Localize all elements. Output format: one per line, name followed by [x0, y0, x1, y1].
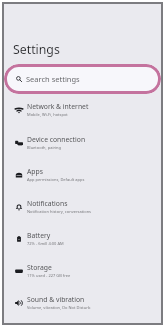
staticText: 72% - 6mill 4:00 AM — [27, 241, 64, 246]
staticText: Mobile, Wi-Fi, hotspot — [27, 112, 68, 117]
staticText: Notification history, conversations — [27, 209, 92, 214]
button[interactable]: Notifications — [2, 191, 163, 223]
staticText: Settings — [13, 41, 60, 58]
staticText: Volume, vibration, Do Not Disturb — [27, 305, 91, 310]
button[interactable]: Network & internet — [2, 94, 163, 126]
staticText: Storage — [27, 263, 52, 272]
staticText: 11% used - 227 GB free — [27, 273, 71, 278]
staticText: Network & internet — [27, 102, 89, 111]
button[interactable]: Sound & vibration — [2, 287, 163, 319]
button[interactable]: Device connection — [2, 127, 163, 159]
staticText: Notifications — [27, 199, 68, 208]
staticText: Sound & vibration — [27, 295, 85, 304]
staticText: Search settings — [26, 74, 80, 84]
staticText: Bluetooth, pairing — [27, 145, 62, 150]
button[interactable]: Apps — [2, 159, 163, 191]
button[interactable]: Search settings — [4, 64, 161, 94]
staticText: Battery — [27, 231, 51, 240]
staticText: App permissions, Default apps — [27, 177, 85, 182]
staticText: Apps — [27, 167, 43, 176]
button[interactable]: Battery — [2, 223, 163, 255]
button[interactable]: Storage — [2, 255, 163, 287]
staticText: Device connection — [27, 135, 86, 144]
